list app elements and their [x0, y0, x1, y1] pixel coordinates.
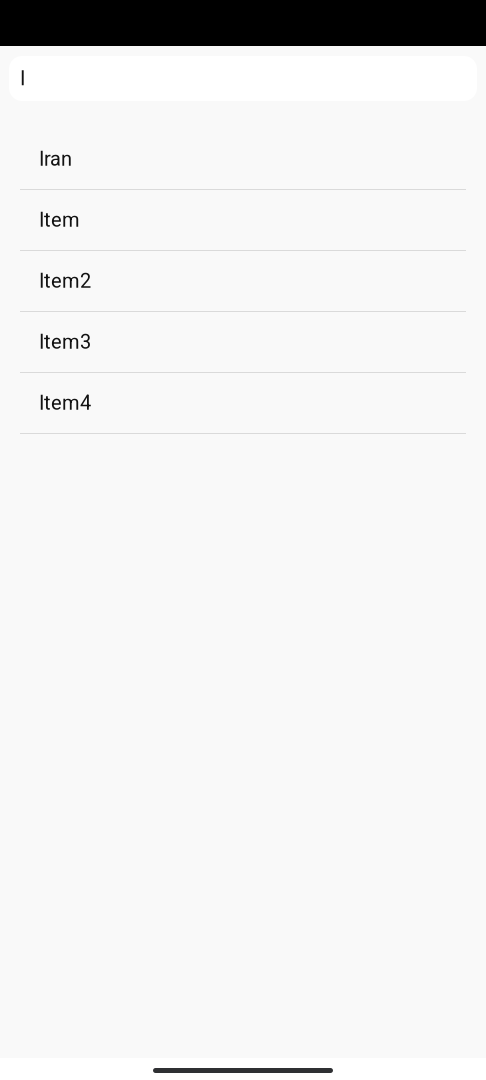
staticText: Item	[39, 208, 80, 232]
staticText: Item4	[39, 391, 91, 415]
button[interactable]: Item2	[0, 251, 486, 312]
staticText: I	[20, 67, 25, 90]
staticText: Iran	[39, 147, 72, 171]
button[interactable]: Iran	[0, 129, 486, 190]
button[interactable]: Item4	[0, 373, 486, 434]
button[interactable]: Item3	[0, 312, 486, 373]
staticText: Item2	[39, 269, 91, 293]
button[interactable]: Item	[0, 190, 486, 251]
button[interactable]: Search	[9, 56, 477, 101]
staticText: Item3	[39, 330, 91, 354]
